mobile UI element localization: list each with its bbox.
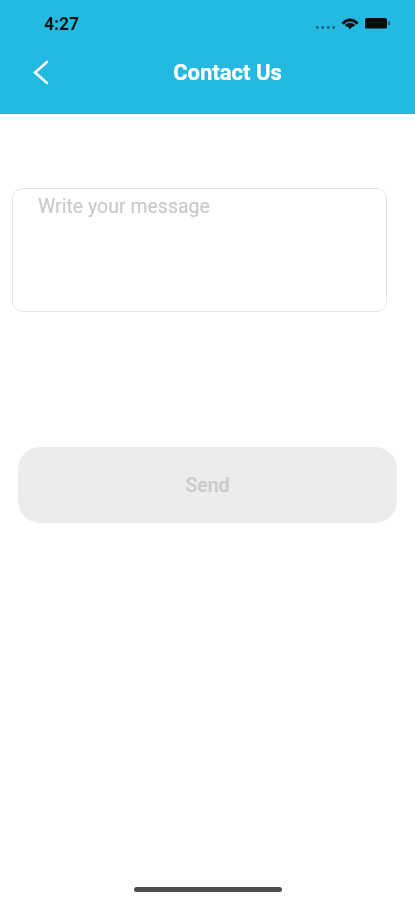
staticText: Send: [185, 474, 230, 497]
staticText: Contact Us: [40, 60, 415, 86]
button[interactable]: Back: [18, 50, 63, 94]
button[interactable]: Write your message: [12, 188, 387, 312]
staticText: 4:27: [44, 14, 80, 35]
staticText: Write your message: [38, 195, 210, 218]
button[interactable]: Send: [18, 447, 397, 523]
